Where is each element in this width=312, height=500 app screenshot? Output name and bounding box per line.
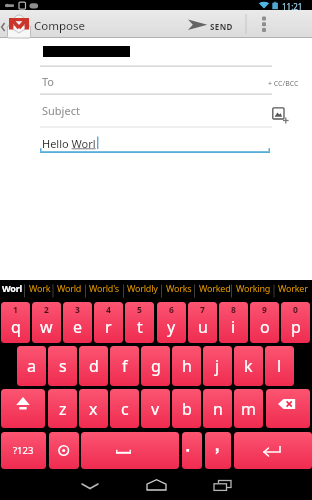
staticText: 0 [293, 304, 298, 316]
staticText: h [182, 355, 192, 377]
button[interactable]: f [110, 346, 139, 386]
staticText: 5 [137, 304, 142, 316]
button[interactable]: z [48, 389, 77, 428]
button[interactable]: x [79, 389, 108, 428]
button[interactable]: Working [236, 282, 271, 294]
button[interactable] [1, 389, 45, 428]
staticText: u [198, 316, 208, 338]
button[interactable]: 2 [32, 302, 61, 343]
staticText: e [73, 316, 83, 338]
button[interactable]: Worl [2, 282, 23, 294]
button[interactable]: l [265, 346, 294, 386]
button[interactable]: 6 [157, 302, 186, 343]
button[interactable]: Worked [199, 282, 231, 294]
staticText: z [59, 398, 67, 420]
button[interactable] [208, 472, 238, 496]
staticText: j [215, 355, 220, 377]
staticText: + CC/BCC [268, 79, 299, 89]
staticText: d [89, 355, 99, 377]
staticText: Worked [199, 282, 231, 294]
button[interactable] [49, 432, 79, 469]
button[interactable]: World's [89, 282, 119, 294]
staticText: Hello Worl [42, 136, 96, 151]
staticText: i [231, 316, 236, 338]
button[interactable]: k [234, 346, 263, 386]
staticText: 9 [262, 304, 267, 316]
staticText: w [40, 316, 53, 338]
staticText: k [244, 355, 253, 377]
button[interactable]: Works [166, 282, 192, 294]
staticText: Subject [42, 103, 80, 118]
staticText: Worker [278, 282, 308, 294]
button[interactable]: c [110, 389, 139, 428]
staticText: g [151, 355, 161, 377]
button[interactable] [40, 40, 272, 66]
staticText: q [11, 316, 21, 338]
button[interactable] [75, 472, 105, 496]
button[interactable]: Worldly [127, 282, 158, 294]
button[interactable]: 9 [250, 302, 279, 343]
staticText: Working [236, 282, 271, 294]
button[interactable]: v [141, 389, 170, 428]
button[interactable] [40, 66, 272, 94]
button[interactable] [205, 432, 231, 469]
button[interactable] [234, 432, 312, 469]
button[interactable]: h [172, 346, 201, 386]
staticText: s [59, 355, 67, 377]
button[interactable]: ?123 [1, 432, 46, 469]
button[interactable]: World [57, 282, 82, 294]
staticText: v [151, 398, 160, 420]
button[interactable]: d [79, 346, 108, 386]
button[interactable] [266, 76, 306, 90]
button[interactable]: 8 [219, 302, 248, 343]
button[interactable]: Worker [278, 282, 308, 294]
staticText: b [182, 398, 192, 420]
button[interactable]: b [172, 389, 201, 428]
staticText: p [291, 316, 301, 338]
button[interactable]: m [234, 389, 263, 428]
staticText: To [42, 74, 55, 89]
button[interactable] [182, 432, 202, 469]
staticText: 8 [231, 304, 236, 316]
button[interactable] [266, 389, 310, 428]
staticText: r [105, 316, 112, 338]
staticText: f [122, 355, 128, 377]
staticText: Worl [2, 282, 23, 294]
button[interactable]: j [203, 346, 232, 386]
button[interactable]: 0 [281, 302, 310, 343]
staticText: 2 [44, 304, 49, 316]
button[interactable] [40, 94, 272, 127]
button[interactable]: n [203, 389, 232, 428]
staticText: y [167, 316, 176, 338]
button[interactable] [142, 472, 172, 496]
staticText: Compose [34, 18, 86, 34]
staticText: 3 [75, 304, 80, 316]
button[interactable]: a [17, 346, 46, 386]
button[interactable]: 7 [188, 302, 217, 343]
staticText: n [213, 398, 223, 420]
button[interactable]: g [141, 346, 170, 386]
button[interactable] [252, 11, 276, 37]
button[interactable] [40, 127, 272, 154]
staticText: 6 [169, 304, 174, 316]
staticText: o [260, 316, 270, 338]
staticText: 4 [106, 304, 111, 316]
staticText: 11:21 [282, 1, 303, 12]
button[interactable]: Work [29, 282, 51, 294]
button[interactable]: 1 [1, 302, 30, 343]
staticText: a [27, 355, 36, 377]
staticText: World [57, 282, 82, 294]
staticText: World's [89, 282, 119, 294]
button[interactable] [183, 11, 243, 37]
staticText: Worldly [127, 282, 158, 294]
staticText: Work [29, 282, 51, 294]
button[interactable] [81, 432, 179, 469]
staticText: 1 [13, 304, 18, 316]
button[interactable]: 4 [94, 302, 123, 343]
staticText: c [121, 398, 129, 420]
button[interactable]: s [48, 346, 77, 386]
button[interactable] [270, 105, 290, 125]
button[interactable]: 5 [125, 302, 154, 343]
staticText: ?123 [13, 444, 34, 457]
button[interactable]: 3 [63, 302, 92, 343]
